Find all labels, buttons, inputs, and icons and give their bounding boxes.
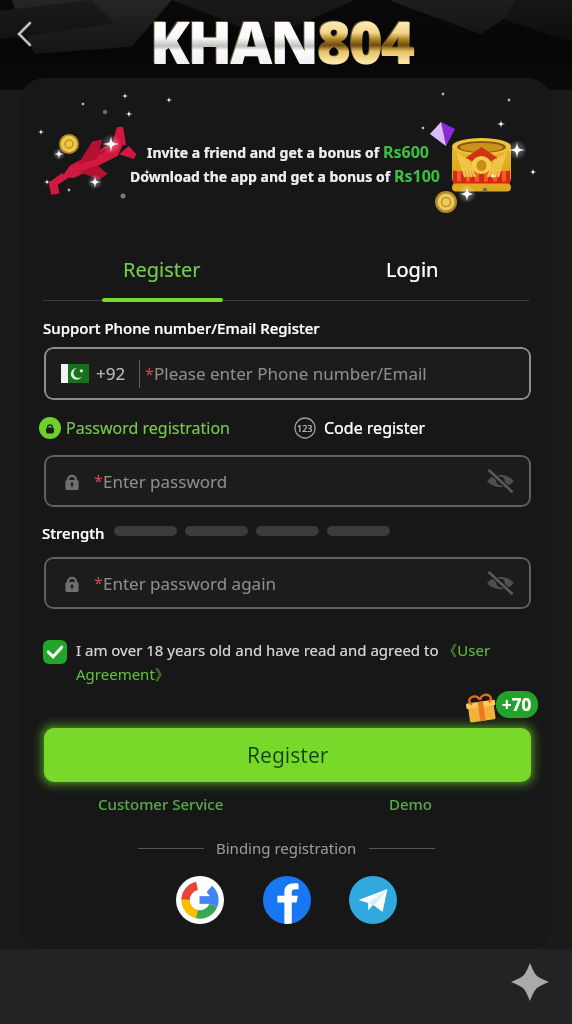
button[interactable]: AI assistant: [505, 957, 555, 1007]
button[interactable]: Customer Service: [41, 791, 281, 817]
staticText: I am over 18 years old and have read and…: [76, 640, 535, 685]
button[interactable]: Register: [44, 728, 531, 782]
staticText: *: [145, 363, 154, 385]
staticText: Code register: [324, 417, 426, 439]
button[interactable]: Show password: [486, 572, 515, 594]
button[interactable]: Sign in with Telegram: [349, 876, 397, 924]
staticText: Rs100: [394, 165, 440, 187]
staticText: +92: [96, 362, 126, 385]
button[interactable]: Show password: [486, 470, 515, 492]
button[interactable]: Agree: [43, 640, 67, 664]
staticText: Enter password: [103, 470, 228, 493]
staticText: 123: [297, 422, 313, 434]
staticText: Login: [386, 256, 439, 283]
staticText: 804: [317, 2, 413, 81]
staticText: Invite a friend and get a bonus of: [147, 143, 383, 162]
button[interactable]: Register: [42, 226, 282, 306]
button[interactable]: 123: [294, 415, 426, 441]
button[interactable]: *: [44, 455, 531, 507]
staticText: Binding registration: [216, 838, 357, 858]
button[interactable]: Sign in with Google: [176, 876, 224, 924]
button[interactable]: Sign in with Facebook: [263, 876, 311, 924]
staticText: KHAN: [150, 2, 317, 81]
staticText: Demo: [389, 794, 432, 814]
staticText: Register: [247, 741, 329, 770]
staticText: +70: [502, 693, 532, 716]
staticText: Download the app and get a bonus of: [130, 167, 394, 186]
staticText: *: [94, 470, 103, 492]
staticText: Enter password again: [103, 572, 277, 595]
button[interactable]: *: [44, 557, 531, 609]
button[interactable]: Demo: [290, 791, 530, 817]
button[interactable]: +92: [44, 347, 531, 400]
staticText: Register: [123, 256, 201, 283]
staticText: Rs600: [383, 141, 429, 163]
staticText: KHAN: [149, 1, 316, 80]
staticText: *: [94, 572, 103, 594]
staticText: Customer Service: [98, 794, 224, 814]
staticText: Please enter Phone number/Email: [154, 362, 427, 385]
button[interactable]: Password registration: [39, 415, 230, 441]
button[interactable]: Back: [2, 12, 46, 56]
button[interactable]: Login: [292, 226, 532, 306]
staticText: 804: [316, 1, 412, 80]
staticText: Password registration: [66, 417, 230, 439]
staticText: Support Phone number/Email Register: [43, 318, 320, 338]
staticText: Strength: [42, 523, 105, 543]
